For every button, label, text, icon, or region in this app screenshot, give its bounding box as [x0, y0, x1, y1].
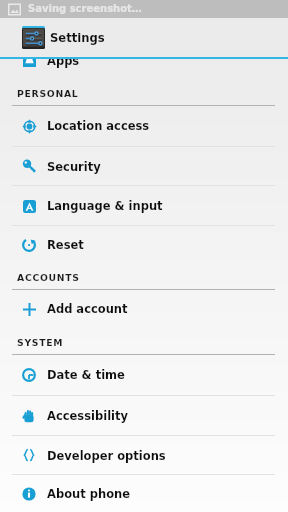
staticText: About phone [47, 487, 131, 500]
button[interactable]: Developer options [0, 436, 288, 474]
button[interactable]: Reset [0, 226, 288, 263]
button[interactable]: Add account [0, 289, 288, 328]
button[interactable]: Security [0, 147, 288, 185]
staticText: Accessibility [47, 409, 129, 422]
staticText: Security [47, 160, 101, 173]
button[interactable]: Apps [0, 58, 288, 79]
button[interactable]: About phone [0, 475, 288, 512]
button[interactable]: Accessibility [0, 396, 288, 435]
staticText: Location access [47, 119, 150, 132]
button[interactable]: Settings [0, 0, 288, 57]
button[interactable]: Language & input [0, 186, 288, 225]
staticText: Date & time [47, 368, 125, 381]
staticText: Add account [47, 302, 128, 315]
staticText: Language & input [47, 199, 163, 212]
staticText: Saving screenshot… [28, 3, 142, 15]
staticText: Apps [47, 58, 80, 67]
staticText: Reset [47, 238, 84, 251]
staticText: Settings [50, 31, 105, 45]
staticText: PERSONAL [17, 88, 79, 99]
button[interactable]: Location access [0, 105, 288, 146]
staticText: SYSTEM [17, 337, 64, 348]
staticText: Developer options [47, 449, 166, 462]
staticText: ACCOUNTS [17, 272, 80, 283]
button[interactable]: Date & time [0, 354, 288, 395]
